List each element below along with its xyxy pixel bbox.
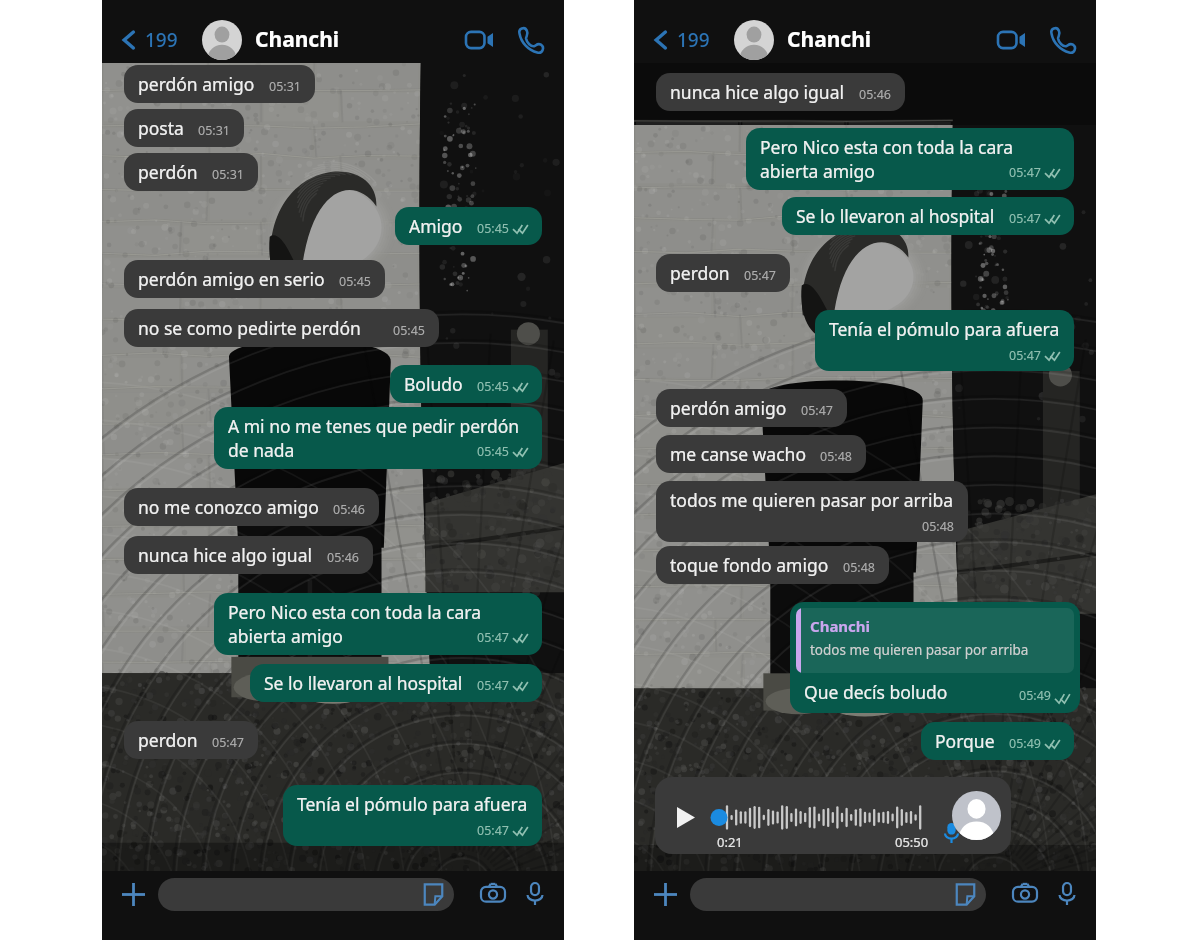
staticText: Pero Nico esta con toda la cara abierta … <box>760 135 1060 183</box>
staticText: 05:49 <box>1009 735 1041 752</box>
staticText: Porque <box>935 729 995 753</box>
staticText: 05:47 <box>477 677 509 694</box>
staticText: toque fondo amigo <box>670 553 829 577</box>
button[interactable]: Chanchi <box>790 602 1080 713</box>
button[interactable]: perdón amigo en serio <box>124 260 385 298</box>
button[interactable]: no me conozco amigo <box>124 488 379 526</box>
button[interactable]: Play <box>655 777 1011 854</box>
button[interactable]: todos me quieren pasar por arriba <box>656 481 968 542</box>
button[interactable]: Back, 199 chats <box>644 19 716 61</box>
button[interactable]: Pero Nico esta con toda la cara abierta … <box>214 593 542 655</box>
button[interactable]: posta <box>124 109 244 147</box>
button[interactable]: Camera <box>1006 875 1044 913</box>
staticText: Tenía el pómulo para afuera <box>297 792 528 816</box>
staticText: perdon <box>670 261 730 285</box>
staticText: no me conozco amigo <box>138 495 319 519</box>
staticText: me canse wacho <box>670 442 806 466</box>
staticText: Que decís boludo <box>804 680 948 704</box>
button[interactable]: Pero Nico esta con toda la cara abierta … <box>746 128 1074 190</box>
button[interactable]: Camera <box>474 875 512 913</box>
staticText: 05:47 <box>744 267 776 284</box>
button[interactable]: perdón <box>124 153 258 191</box>
staticText: 05:45 <box>339 273 371 290</box>
button[interactable]: Stickers <box>422 883 445 906</box>
staticText: Boludo <box>404 372 463 396</box>
button[interactable]: Se lo llevaron al hospital <box>782 197 1074 235</box>
staticText: 05:50 <box>895 833 929 851</box>
button[interactable]: Attach <box>646 875 684 913</box>
button[interactable]: perdon <box>124 721 258 759</box>
staticText: 0:21 <box>717 833 743 851</box>
staticText: A mi no me tenes que pedir perdón de nad… <box>228 414 528 462</box>
staticText: no se como pedirte perdón <box>138 316 361 340</box>
staticText: nunca hice algo igual <box>138 543 313 567</box>
staticText: 05:46 <box>859 86 891 103</box>
staticText: 199 <box>677 27 710 53</box>
button[interactable]: Boludo <box>390 365 542 403</box>
staticText: perdón <box>138 160 198 184</box>
staticText: perdón amigo <box>670 396 787 420</box>
staticText: 05:47 <box>1009 164 1041 181</box>
button[interactable]: Stickers <box>954 883 977 906</box>
staticText: posta <box>138 116 184 140</box>
button[interactable]: Attach <box>114 875 152 913</box>
staticText: 05:46 <box>327 549 359 566</box>
button[interactable]: Voice call <box>508 17 554 63</box>
staticText: 05:49 <box>1019 687 1051 704</box>
staticText: Amigo <box>409 214 463 238</box>
staticText: Tenía el pómulo para afuera <box>829 317 1060 341</box>
button[interactable]: me canse wacho <box>656 435 866 473</box>
button[interactable]: Amigo <box>395 207 542 245</box>
staticText: 05:47 <box>1009 210 1041 227</box>
staticText: perdón amigo en serio <box>138 267 325 291</box>
staticText: 05:31 <box>212 166 244 183</box>
button[interactable]: no se como pedirte perdón <box>124 309 439 347</box>
button[interactable]: A mi no me tenes que pedir perdón de nad… <box>214 407 542 469</box>
staticText: todos me quieren pasar por arriba <box>670 488 954 512</box>
staticText: 05:47 <box>801 402 833 419</box>
button[interactable]: Voice message <box>1048 875 1086 913</box>
button[interactable]: nunca hice algo igual <box>656 73 905 111</box>
button[interactable]: Video call <box>456 17 502 63</box>
staticText: Se lo llevaron al hospital <box>796 204 995 228</box>
staticText: 05:31 <box>269 78 301 95</box>
staticText: 05:45 <box>393 322 425 339</box>
staticText: 05:45 <box>477 443 509 460</box>
button[interactable]: Voice call <box>1040 17 1086 63</box>
button[interactable]: perdón amigo <box>656 389 847 427</box>
staticText: 199 <box>145 27 178 53</box>
staticText: Chanchi <box>255 25 340 54</box>
staticText: 05:47 <box>477 822 509 839</box>
staticText: todos me quieren pasar por arriba <box>810 641 1029 659</box>
staticText: Se lo llevaron al hospital <box>264 671 463 695</box>
staticText: 05:45 <box>477 378 509 395</box>
staticText: 05:47 <box>1009 347 1041 364</box>
button[interactable]: perdón amigo <box>124 65 315 103</box>
staticText: perdon <box>138 728 198 752</box>
staticText: 05:48 <box>820 448 852 465</box>
staticText: 05:48 <box>922 518 954 535</box>
button[interactable]: perdon <box>656 254 790 292</box>
button[interactable]: Se lo llevaron al hospital <box>250 664 542 702</box>
staticText: 05:48 <box>843 559 875 576</box>
staticText: nunca hice algo igual <box>670 80 845 104</box>
button[interactable]: Back, 199 chats <box>112 19 184 61</box>
staticText: Pero Nico esta con toda la cara abierta … <box>228 600 528 648</box>
button[interactable]: toque fondo amigo <box>656 546 889 584</box>
staticText: 05:45 <box>477 220 509 237</box>
button[interactable]: Tenía el pómulo para afuera <box>283 785 542 846</box>
button[interactable]: nunca hice algo igual <box>124 536 373 574</box>
button[interactable]: Voice message <box>516 875 554 913</box>
button[interactable]: Tenía el pómulo para afuera <box>815 310 1074 371</box>
staticText: 05:47 <box>477 629 509 646</box>
button[interactable]: Stickers <box>158 878 454 911</box>
button[interactable]: Porque <box>921 722 1074 760</box>
staticText: 05:31 <box>198 122 230 139</box>
button[interactable]: Video call <box>988 17 1034 63</box>
staticText: perdón amigo <box>138 72 255 96</box>
button[interactable]: Stickers <box>690 878 986 911</box>
staticText: 05:47 <box>212 734 244 751</box>
staticText: 05:46 <box>333 501 365 518</box>
other: Play <box>677 807 695 828</box>
staticText: Chanchi <box>787 25 872 54</box>
